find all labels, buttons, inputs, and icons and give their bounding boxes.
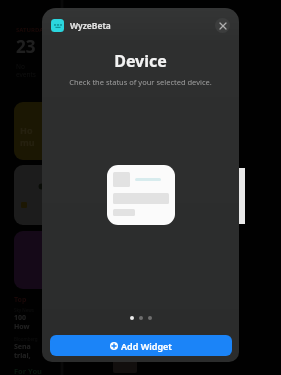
- staticText: WyzeBeta: [70, 20, 111, 32]
- staticText: Top: [14, 295, 27, 305]
- staticText: Ho: [20, 124, 33, 136]
- staticText: Check the status of your selected device…: [69, 77, 212, 87]
- staticText: mu: [20, 136, 35, 148]
- button[interactable]: Add Widget: [50, 335, 232, 356]
- staticText: Sena trial,: [14, 342, 31, 360]
- staticText: 100 How: [14, 313, 30, 331]
- staticText: Device: [114, 50, 167, 72]
- button[interactable]: [107, 165, 175, 225]
- staticText: SATURDAY: [16, 26, 47, 34]
- staticText: 23: [16, 35, 36, 58]
- staticText: For You: [14, 366, 42, 375]
- button[interactable]: Close: [215, 18, 230, 33]
- staticText: Add Widget: [121, 340, 172, 352]
